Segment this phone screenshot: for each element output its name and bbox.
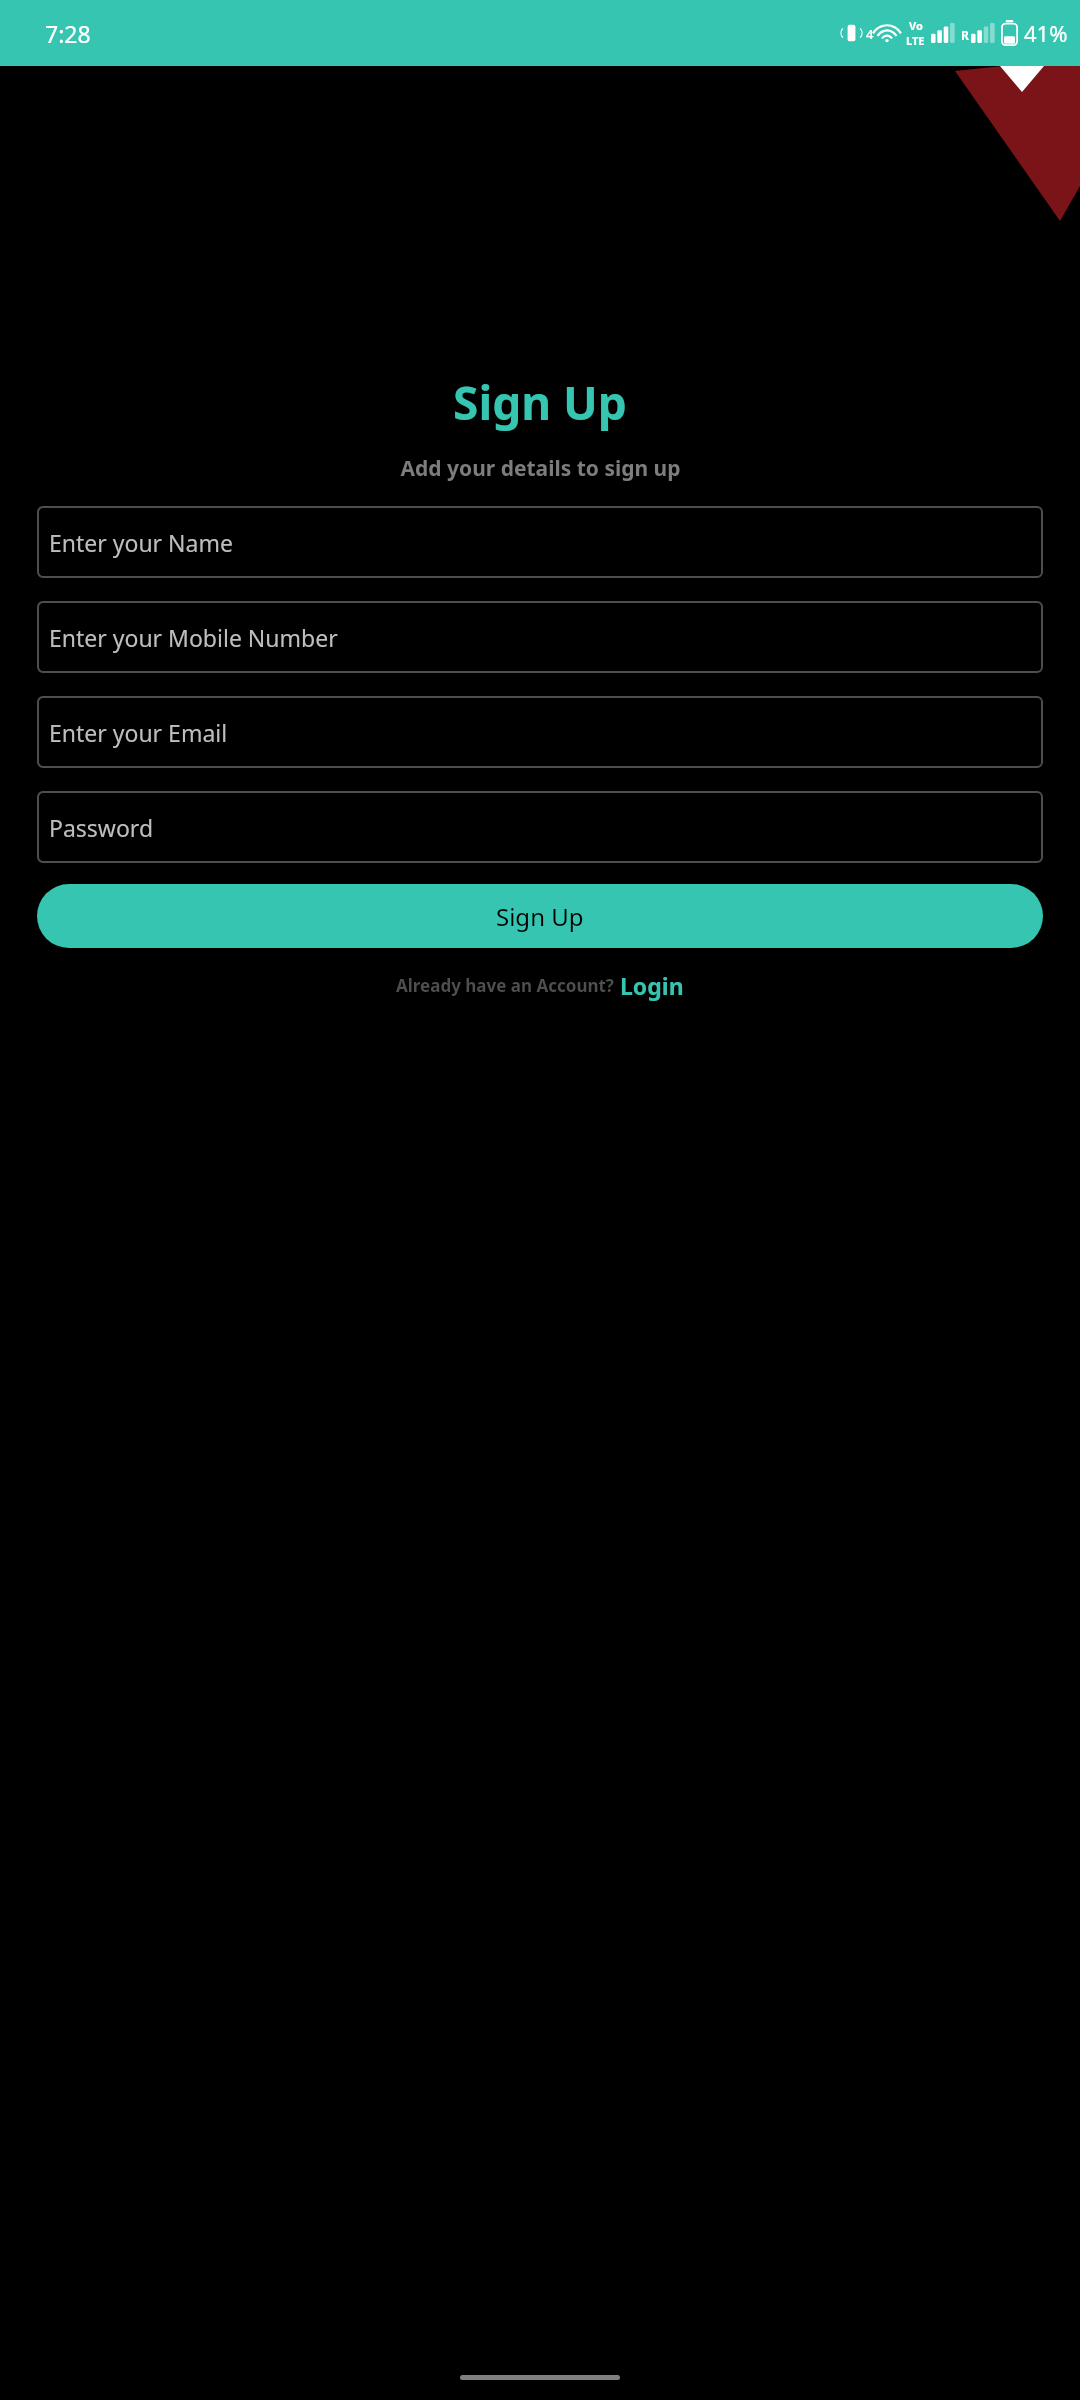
staticText: 4 xyxy=(866,25,874,43)
staticText: 41% xyxy=(1024,18,1068,48)
staticText: Enter your Mobile Number xyxy=(49,622,338,653)
button[interactable]: Login xyxy=(620,970,684,1001)
other: Wi-Fi xyxy=(874,23,900,43)
other: Signal xyxy=(971,23,995,43)
staticText: Enter your Email xyxy=(49,717,228,748)
staticText: Password xyxy=(49,812,154,843)
button[interactable]: Sign Up xyxy=(37,884,1043,948)
button[interactable]: Enter your Name xyxy=(37,506,1043,578)
staticText: R xyxy=(961,27,969,43)
staticText: Already have an Account? xyxy=(396,974,614,997)
staticText: Login xyxy=(620,970,684,1001)
staticText: Add your details to sign up xyxy=(400,454,681,483)
other: Signal xyxy=(931,23,955,43)
staticText: Enter your Name xyxy=(49,527,233,558)
staticText: Vo xyxy=(909,18,923,33)
staticText: LTE xyxy=(906,33,925,48)
staticText: Sign Up xyxy=(496,900,584,933)
staticText: 7:28 xyxy=(45,18,91,49)
button[interactable]: Enter your Email xyxy=(37,696,1043,768)
other: Battery 41 percent xyxy=(1001,20,1018,46)
other: Vibrate xyxy=(843,22,860,44)
staticText: Sign Up xyxy=(453,371,627,434)
button[interactable]: Enter your Mobile Number xyxy=(37,601,1043,673)
button[interactable]: Password xyxy=(37,791,1043,863)
